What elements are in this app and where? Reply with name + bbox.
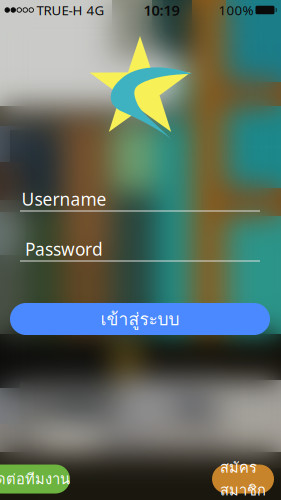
staticText: Password xyxy=(25,237,103,260)
staticText: 100% xyxy=(218,1,253,19)
button[interactable]: เข้าสู่ระบบ xyxy=(10,303,270,335)
staticText: TRUE-H xyxy=(36,1,82,19)
button[interactable]: สมัครสมาชิก xyxy=(212,464,274,493)
staticText: ติดต่อทีมงาน xyxy=(0,468,70,490)
button[interactable]: ติดต่อทีมงาน xyxy=(0,464,70,493)
staticText: 10:19 xyxy=(143,0,179,20)
staticText: เข้าสู่ระบบ xyxy=(100,306,179,332)
staticText: 4G xyxy=(86,1,104,19)
staticText: สมัครสมาชิก xyxy=(220,456,266,500)
staticText: Username xyxy=(21,187,106,210)
